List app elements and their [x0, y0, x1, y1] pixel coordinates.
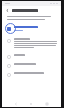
- button[interactable]: Home: [23, 100, 39, 107]
- button[interactable]: Back: [8, 100, 23, 107]
- button[interactable]: [2, 36, 61, 50]
- button[interactable]: [2, 61, 61, 70]
- button[interactable]: Back: [5, 8, 10, 13]
- button[interactable]: Recent apps: [39, 100, 55, 107]
- button[interactable]: [2, 70, 61, 79]
- button[interactable]: [2, 23, 61, 34]
- button[interactable]: [2, 52, 61, 61]
